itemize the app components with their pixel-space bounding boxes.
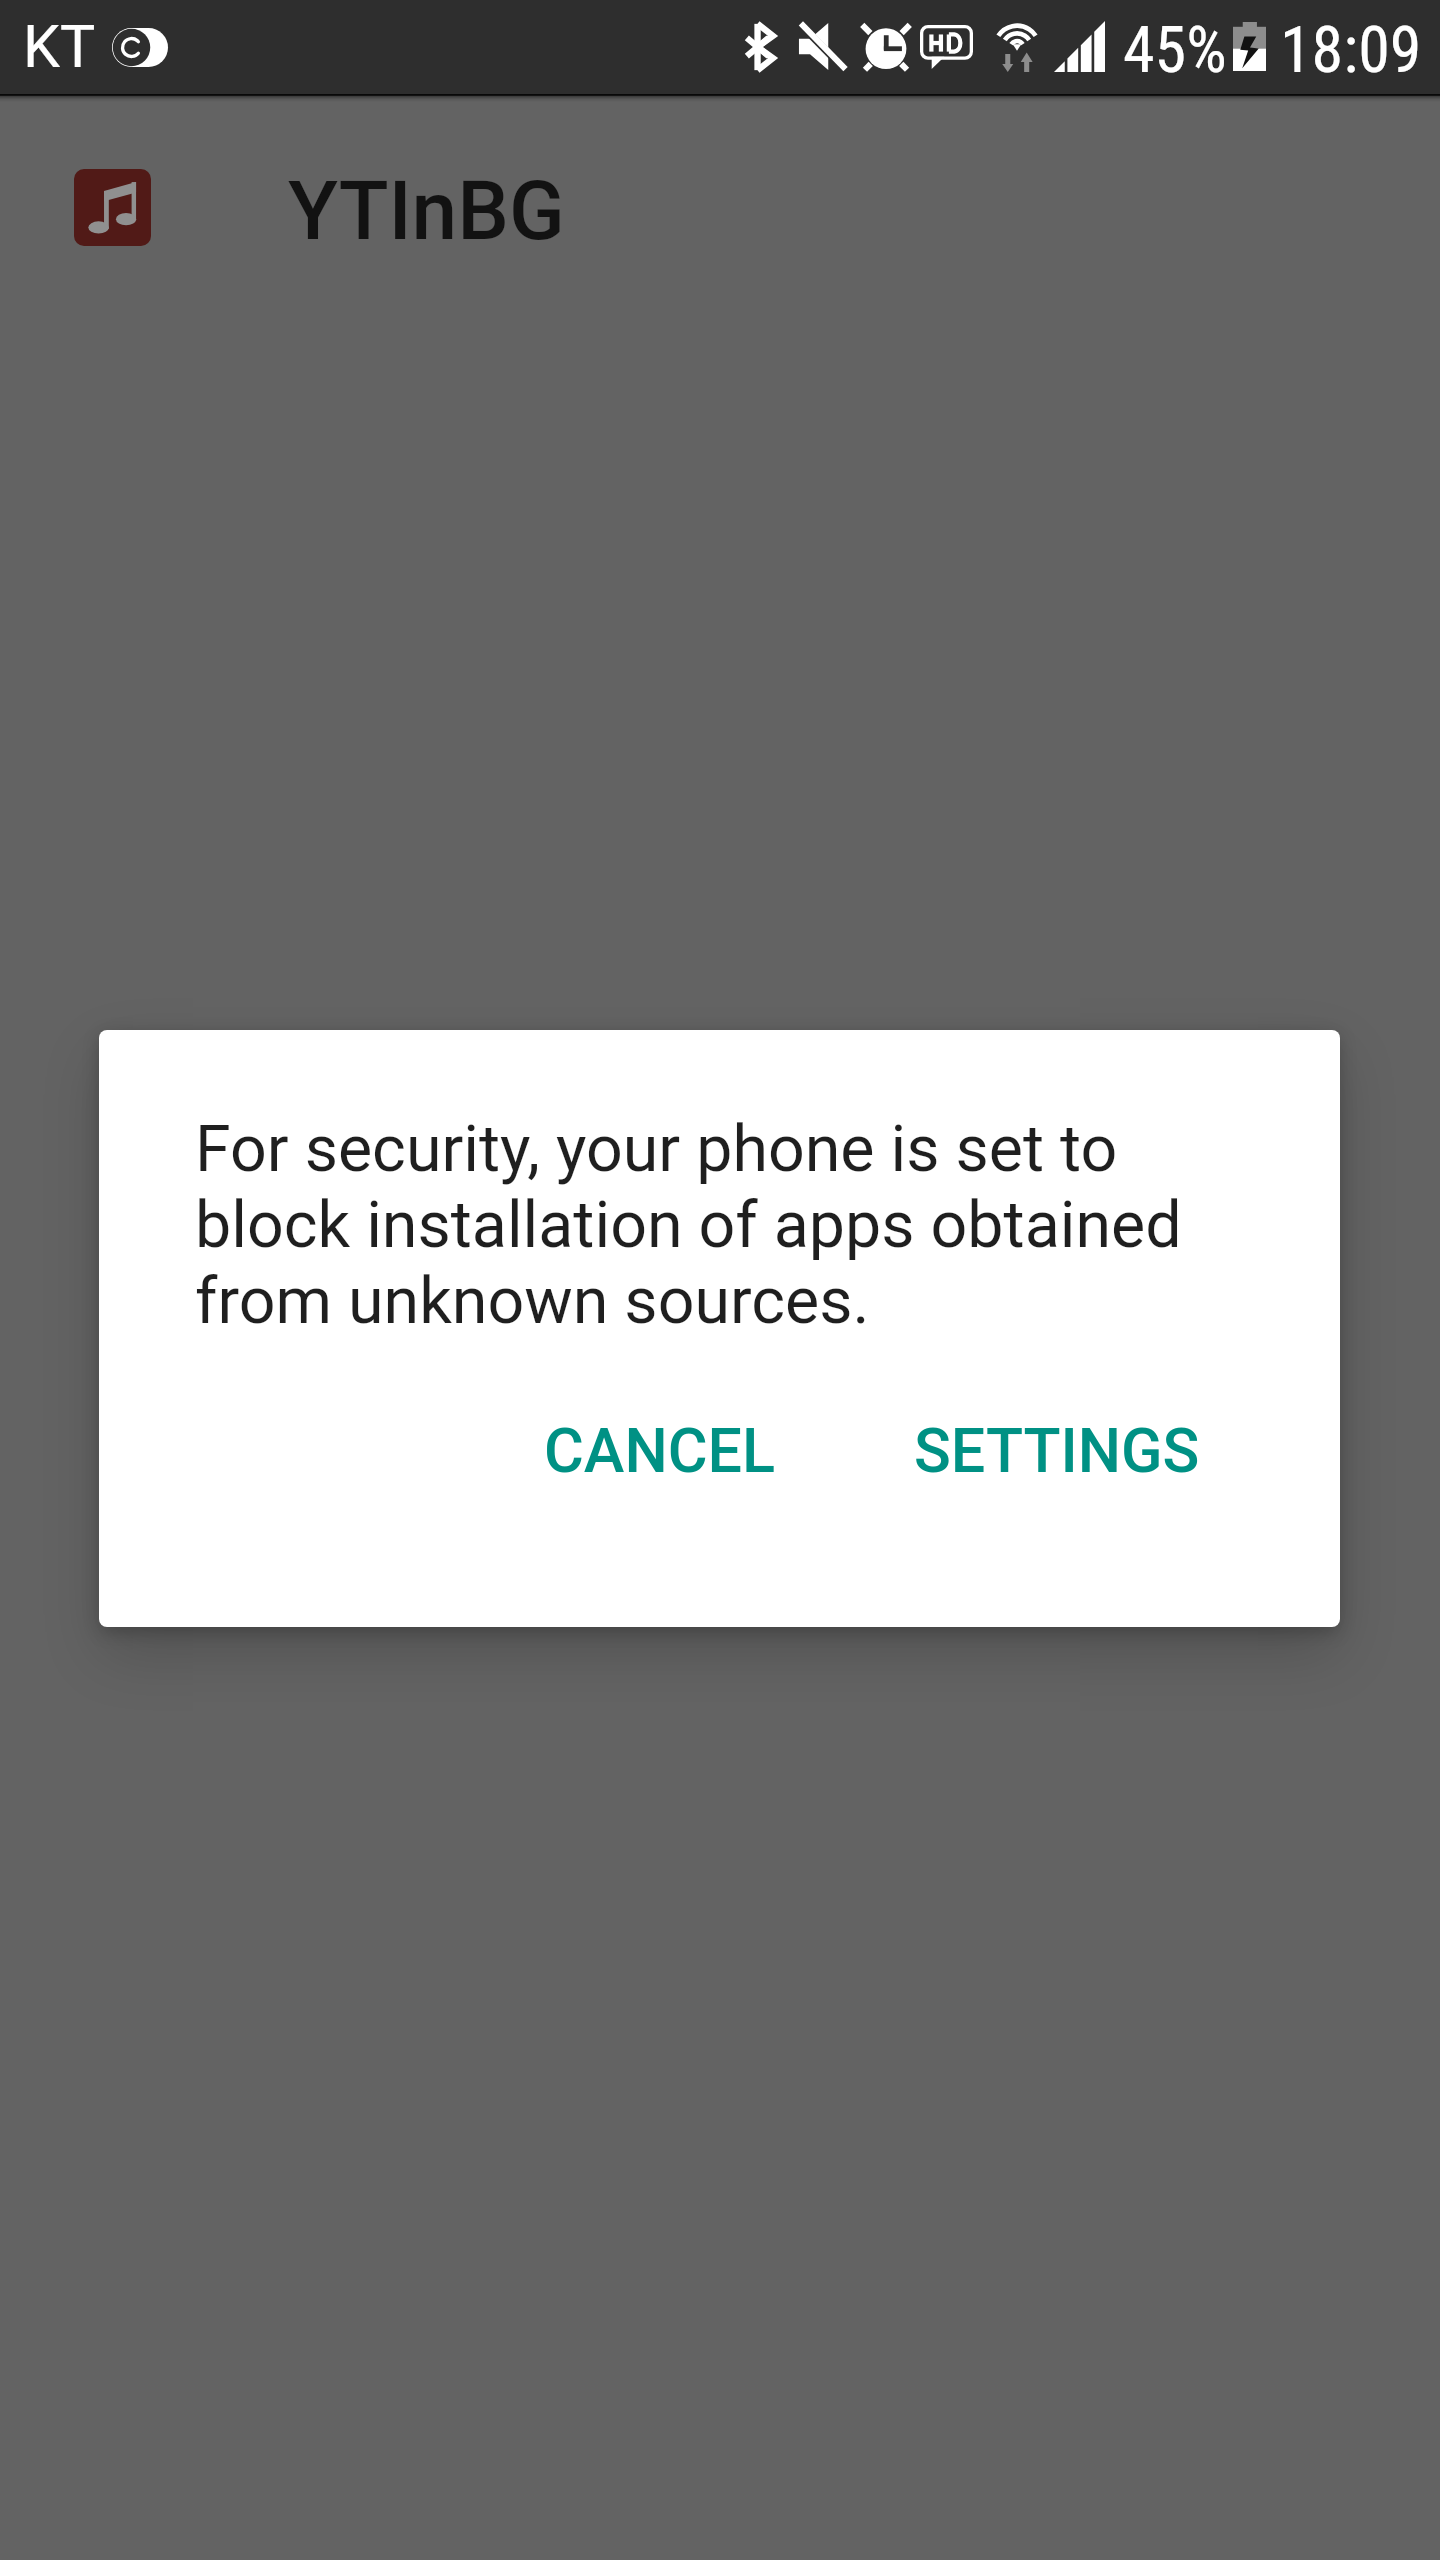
other: HD voice	[920, 25, 973, 69]
other: Battery 45 percent, charging	[1233, 22, 1266, 71]
button[interactable]: SETTINGS	[890, 1391, 1224, 1510]
other: Wi-Fi connected	[995, 19, 1039, 72]
staticText: KT	[23, 12, 96, 81]
other: Sound muted	[798, 22, 846, 71]
staticText: 18:09	[1280, 13, 1422, 88]
other: Bluetooth on	[745, 21, 776, 73]
other: Alarm set	[862, 22, 910, 71]
button[interactable]: CANCEL	[520, 1391, 800, 1510]
other: Data saver on	[112, 28, 168, 67]
staticText: For security, your phone is set to block…	[195, 1111, 1255, 1339]
other: Mobile signal full	[1054, 21, 1105, 72]
staticText: 45%	[1123, 13, 1227, 88]
staticText: SETTINGS	[914, 1415, 1200, 1486]
other: YTInBG app icon	[74, 169, 151, 246]
button[interactable]: YTInBG app icon	[0, 96, 1440, 318]
staticText: YTInBG	[288, 163, 565, 259]
staticText: CANCEL	[544, 1415, 776, 1486]
